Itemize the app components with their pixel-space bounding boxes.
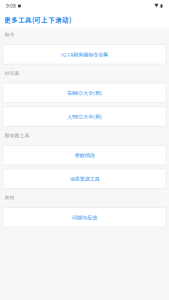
staticText: 9:08 xyxy=(6,3,16,9)
staticText: 参数修改 xyxy=(74,151,94,159)
staticText: 问题与反馈 xyxy=(72,213,97,221)
staticText: 消息发送工具 xyxy=(69,175,99,182)
button[interactable]: 人物ID大全(新) xyxy=(3,107,166,126)
staticText: 车辆ID大全(新) xyxy=(67,89,102,97)
staticText: 其他 xyxy=(4,194,14,201)
button[interactable]: IGTA服务器指令合集 xyxy=(3,44,166,64)
button[interactable]: 消息发送工具 xyxy=(3,169,166,188)
staticText: 服务器工具 xyxy=(4,132,29,139)
staticText: ▼ xyxy=(154,3,159,9)
button[interactable]: 问题与反馈 xyxy=(3,207,166,227)
button[interactable]: 车辆ID大全(新) xyxy=(3,83,166,103)
staticText: IGTA服务器指令合集 xyxy=(61,50,108,58)
button[interactable]: 参数修改 xyxy=(3,145,166,165)
staticText: 时间表 xyxy=(4,70,19,77)
staticText: 更多工具(可上下滑动) xyxy=(4,15,71,24)
staticText: 指令 xyxy=(4,31,14,38)
staticText: 人物ID大全(新) xyxy=(67,113,102,120)
